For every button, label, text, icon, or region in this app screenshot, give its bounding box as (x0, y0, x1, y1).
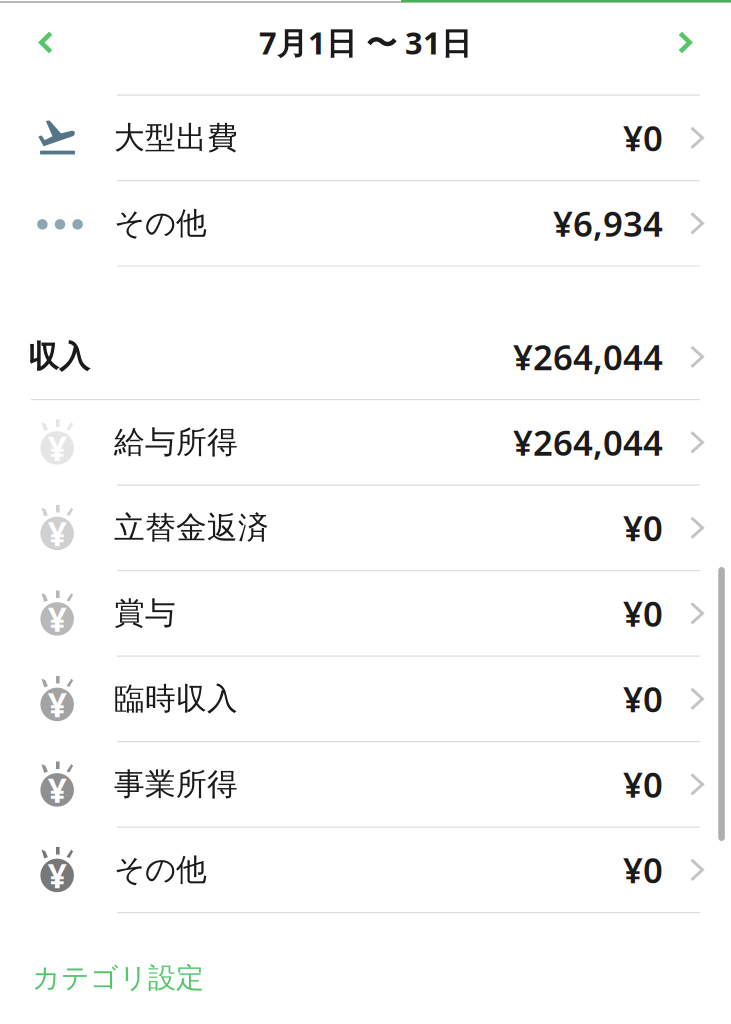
staticText: 給与所得 (114, 423, 238, 461)
staticText: 事業所得 (114, 765, 238, 803)
staticText: ¥ (48, 768, 67, 812)
staticText: 7月1日 〜 31日 (259, 22, 472, 63)
staticText: カテゴリ設定 (32, 961, 204, 995)
staticText: ¥0 (623, 761, 663, 807)
staticText: ¥ (48, 426, 67, 470)
staticText: 立替金返済 (114, 509, 269, 547)
staticText: 臨時収入 (114, 680, 238, 718)
staticText: 大型出費 (114, 119, 238, 157)
button[interactable]: ¥ (0, 486, 731, 571)
button[interactable]: その他 (0, 181, 731, 267)
button[interactable]: 収入 (0, 315, 731, 400)
staticText: 賞与 (114, 594, 176, 632)
button[interactable]: ¥ (0, 657, 731, 742)
button[interactable]: Next period (639, 4, 731, 81)
staticText: その他 (114, 204, 207, 242)
staticText: ¥0 (623, 505, 663, 551)
staticText: ¥ (48, 853, 67, 898)
staticText: 収入 (28, 338, 90, 376)
button[interactable]: ¥ (0, 571, 731, 657)
staticText: ¥0 (623, 115, 663, 161)
staticText: ¥0 (623, 847, 663, 893)
staticText: ¥264,044 (513, 334, 663, 380)
staticText: その他 (114, 851, 207, 889)
button[interactable]: ¥ (0, 742, 731, 828)
staticText: ¥264,044 (513, 419, 663, 465)
button[interactable]: Previous period (0, 4, 92, 81)
button[interactable]: ¥ (0, 828, 731, 913)
button[interactable]: 大型出費 (0, 96, 731, 181)
staticText: ¥6,934 (553, 200, 663, 246)
staticText: ¥ (48, 511, 67, 556)
staticText: ¥ (48, 682, 67, 727)
button[interactable]: ¥ (0, 400, 731, 486)
staticText: ¥ (48, 597, 67, 641)
staticText: ¥0 (623, 590, 663, 636)
button[interactable]: カテゴリ設定 (0, 913, 731, 995)
staticText: ¥0 (623, 676, 663, 722)
